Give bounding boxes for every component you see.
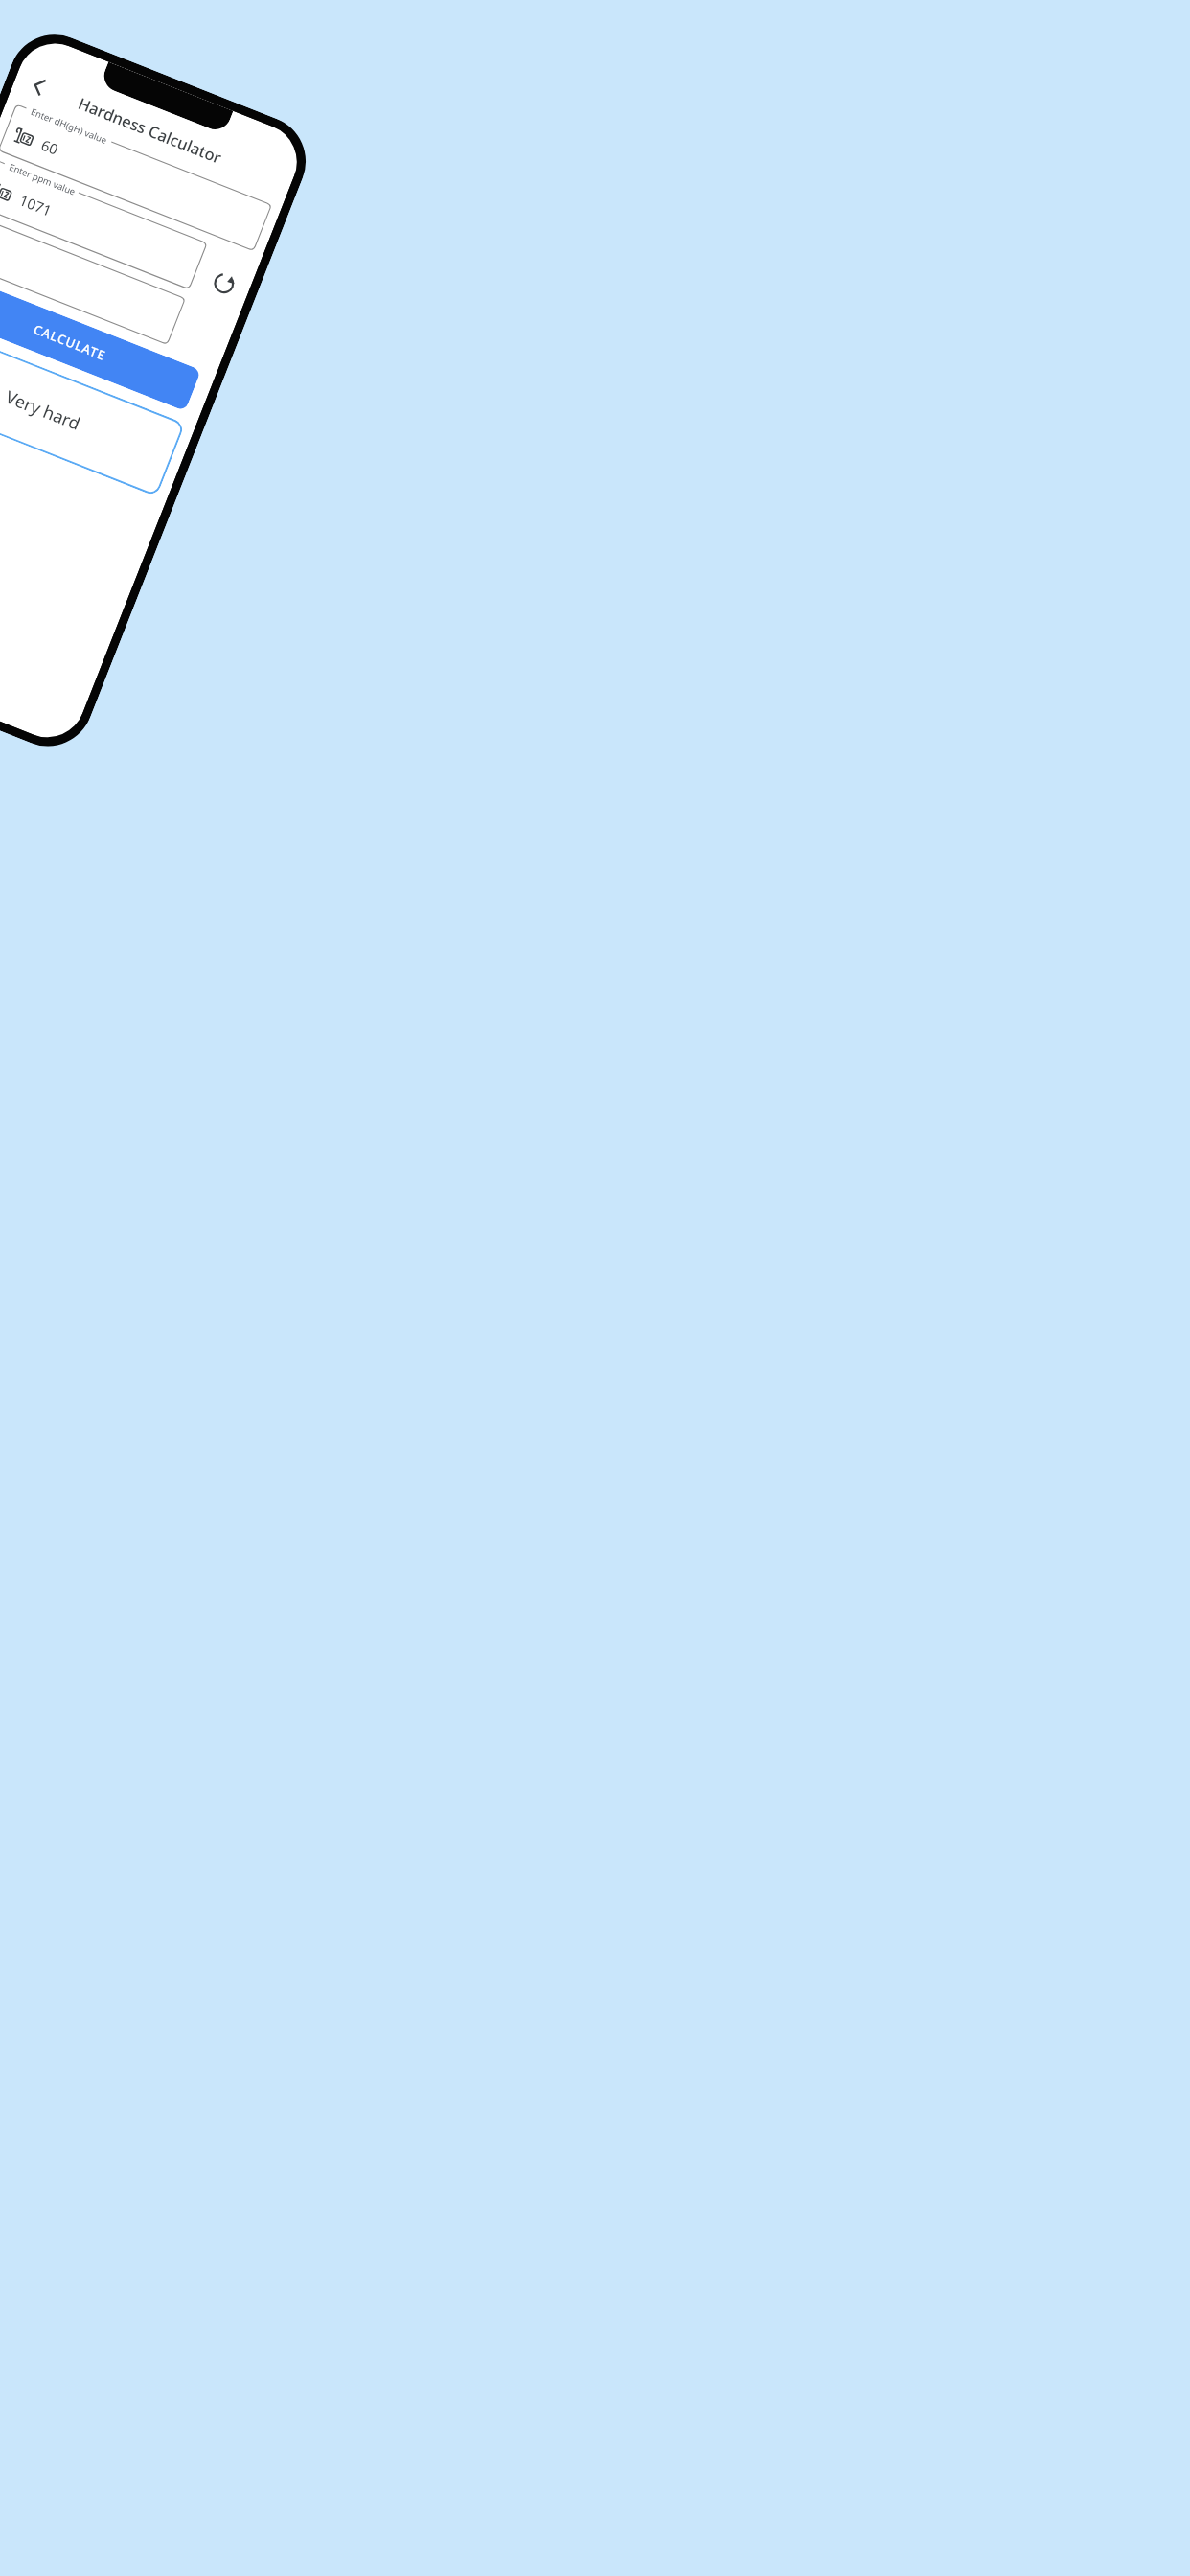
staticText: Enter ppm value — [7, 161, 78, 198]
button[interactable]: Enter ppm value — [0, 159, 207, 289]
staticText: Hardness Calculator — [76, 92, 225, 167]
staticText: CALCULATE — [31, 320, 109, 364]
button[interactable]: Enter dH(gH) value — [0, 104, 272, 251]
button[interactable]: Very hard — [0, 323, 185, 497]
staticText: 60 — [39, 135, 62, 159]
button[interactable]: Back — [12, 60, 64, 112]
staticText: 1071 — [17, 190, 55, 220]
button[interactable] — [0, 214, 185, 344]
staticText: Very hard — [2, 385, 84, 436]
button[interactable]: CALCULATE — [0, 273, 201, 411]
staticText: Enter dH(gH) value — [29, 105, 109, 147]
button[interactable]: Refresh — [198, 257, 250, 310]
